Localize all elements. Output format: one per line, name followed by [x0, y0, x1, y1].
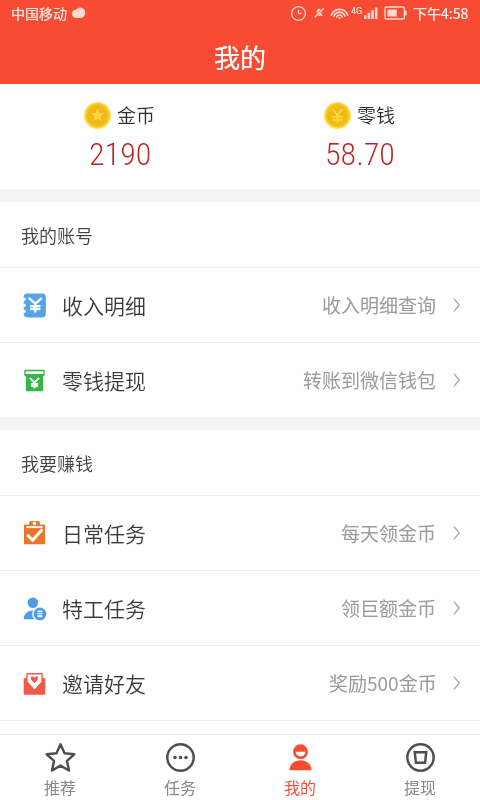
staticText: 下午4:58 [413, 3, 469, 23]
other: 推荐 [46, 743, 75, 772]
button[interactable]: 推荐 [0, 735, 120, 800]
button[interactable]: 邀请好友 [0, 646, 480, 720]
button[interactable]: 零钱 [240, 84, 480, 189]
staticText: 零钱 [357, 101, 396, 129]
staticText: 零钱提现 [62, 365, 146, 395]
staticText: 推荐 [44, 775, 77, 798]
staticText: 2190 [89, 135, 152, 173]
staticText: 收入明细 [62, 290, 146, 320]
button[interactable]: 提现 [360, 735, 480, 800]
other: 我的 [286, 743, 315, 772]
staticText: 每天领金币 [341, 519, 437, 547]
button[interactable]: 收入明细 [0, 268, 480, 342]
staticText: 我要赚钱 [21, 450, 93, 476]
staticText: 日常任务 [62, 518, 146, 548]
button[interactable]: 我的 [240, 735, 360, 800]
button[interactable]: 日常任务 [0, 496, 480, 570]
staticText: 转账到微信钱包 [303, 366, 437, 394]
staticText: 提现 [404, 775, 437, 798]
button[interactable]: 金币 [0, 84, 240, 189]
staticText: 我的账号 [21, 222, 93, 248]
other: 提现 [406, 743, 435, 772]
button[interactable]: 任务 [120, 735, 240, 800]
other: 任务 [166, 743, 195, 772]
staticText: 任务 [164, 775, 197, 798]
staticText: 58.70 [325, 135, 395, 173]
staticText: 特工任务 [62, 593, 146, 623]
button[interactable]: 零钱提现 [0, 343, 480, 417]
staticText: 领巨额金币 [341, 594, 437, 622]
staticText: 我的 [214, 38, 267, 76]
staticText: 金币 [117, 101, 156, 129]
staticText: 收入明细查询 [322, 291, 437, 319]
staticText: 奖励500金币 [329, 669, 437, 697]
button[interactable]: 特工任务 [0, 571, 480, 645]
staticText: 4G [351, 6, 363, 17]
staticText: 中国移动 [11, 3, 67, 23]
staticText: 我的 [284, 775, 317, 798]
staticText: 邀请好友 [62, 668, 146, 698]
